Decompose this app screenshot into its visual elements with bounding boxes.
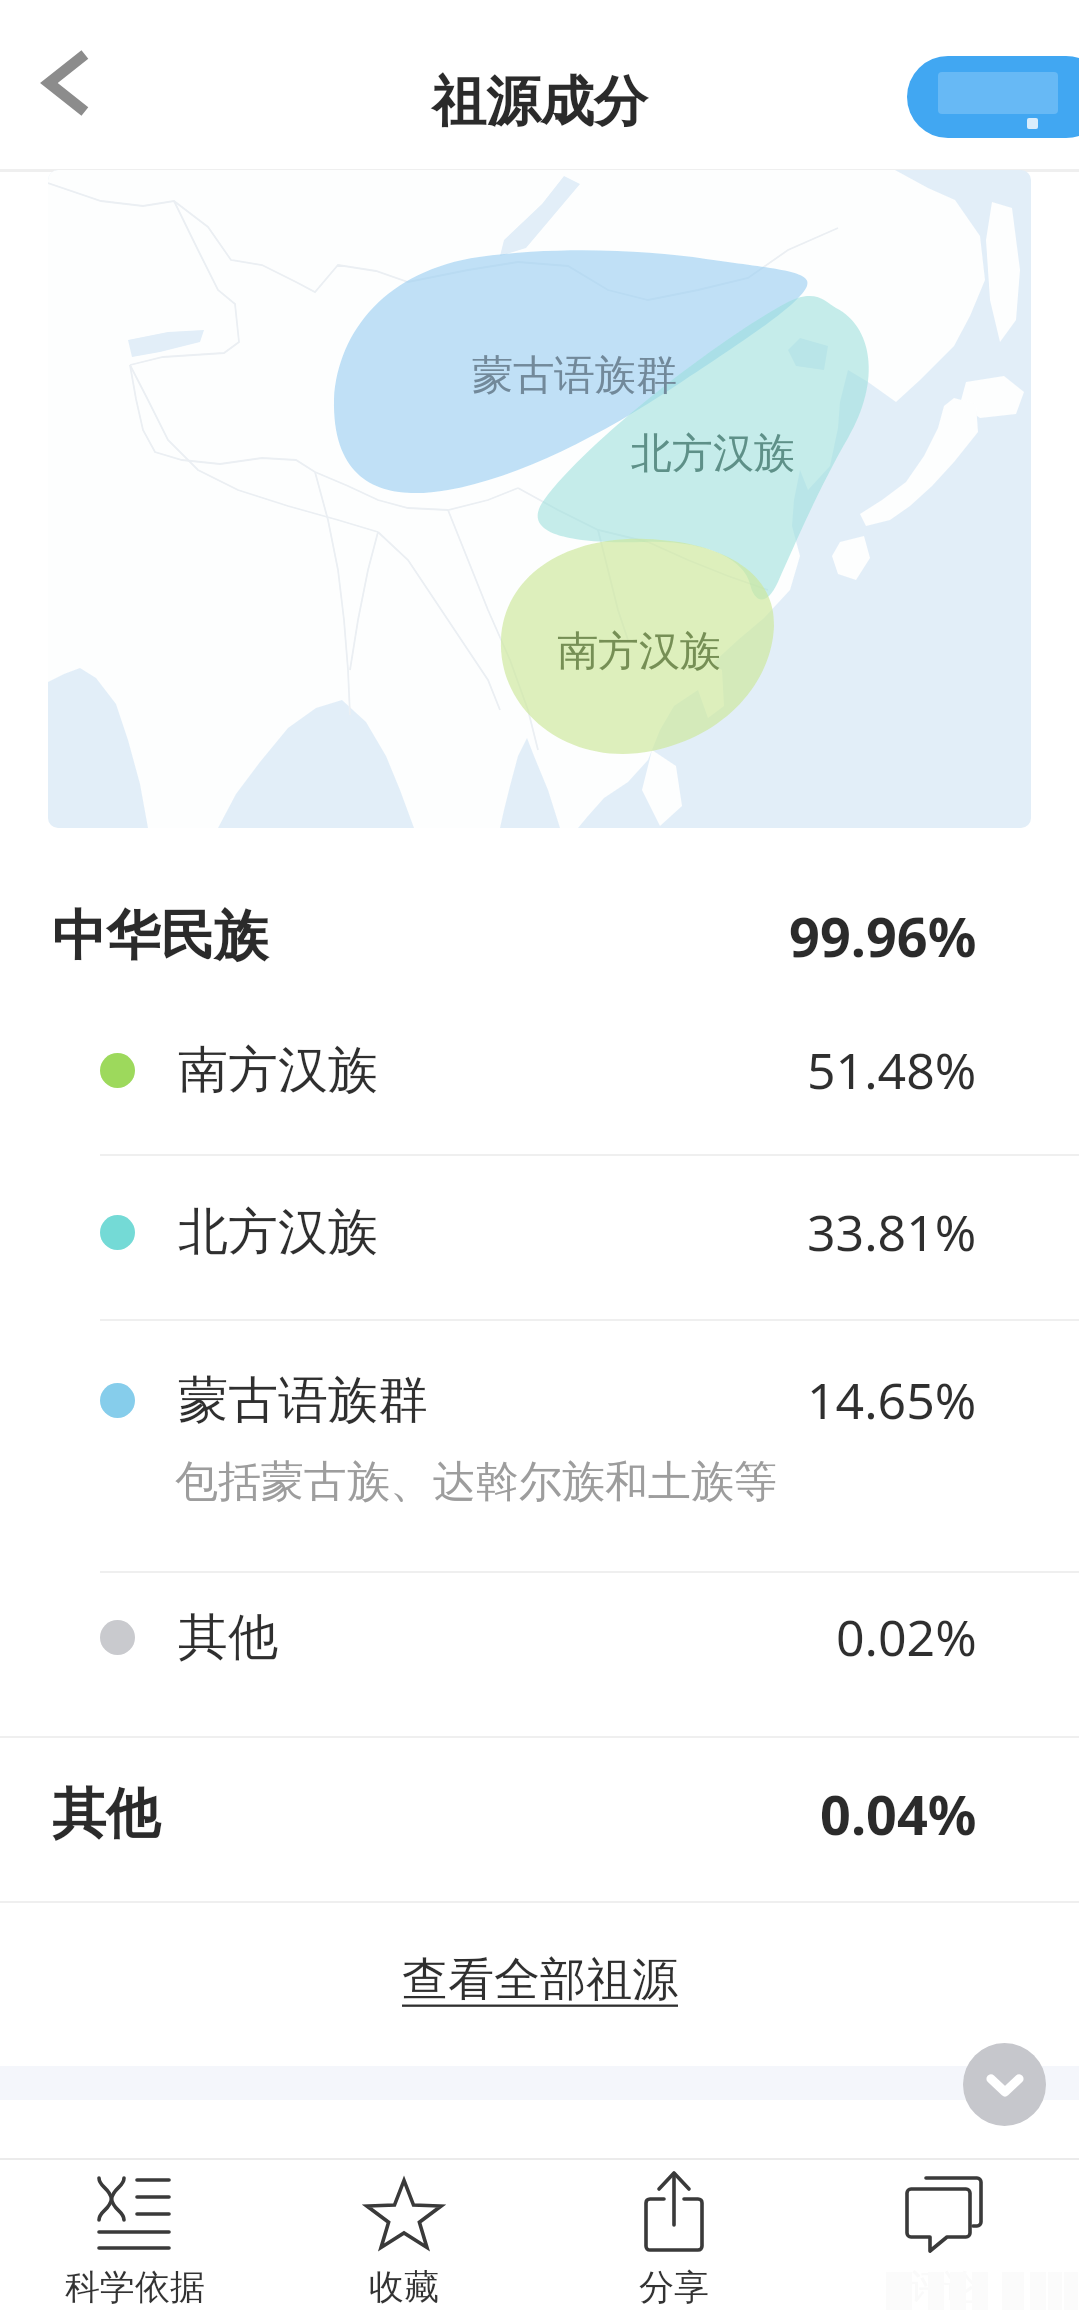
- button[interactable]: 查看全部祖源: [0, 1910, 1079, 2050]
- button[interactable]: Share card: [907, 56, 1079, 138]
- button[interactable]: 分享: [539, 2160, 809, 2323]
- button[interactable]: 南方汉族: [0, 1025, 1079, 1115]
- button[interactable]: 其他: [0, 1775, 1079, 1853]
- staticText: 51.48%: [807, 1036, 977, 1104]
- staticText: 包括蒙古族、达斡尔族和土族等: [175, 1455, 777, 1509]
- staticText: 南方汉族: [178, 1039, 378, 1102]
- staticText: 中华民族: [52, 902, 268, 970]
- staticText: 查看全部祖源: [402, 1951, 678, 2009]
- button[interactable]: Back: [20, 33, 120, 133]
- staticText: 分享: [639, 2265, 709, 2309]
- button[interactable]: 其他: [0, 1592, 1079, 1682]
- button[interactable]: 北方汉族: [0, 1187, 1079, 1277]
- staticText: 南方汉族: [557, 626, 721, 678]
- button[interactable]: 中华民族: [0, 897, 1079, 975]
- staticText: 北方汉族: [631, 428, 795, 480]
- staticText: 其他: [52, 1780, 160, 1848]
- staticText: 14.65%: [807, 1366, 977, 1434]
- button[interactable]: 收藏: [269, 2160, 539, 2323]
- staticText: 99.96%: [789, 899, 977, 973]
- staticText: 科学依据: [65, 2265, 205, 2309]
- button[interactable]: Collapse: [963, 2043, 1046, 2126]
- staticText: 蒙古语族群: [178, 1369, 428, 1432]
- staticText: 33.81%: [807, 1198, 977, 1266]
- button[interactable]: 评论: [809, 2160, 1079, 2323]
- staticText: 收藏: [369, 2265, 439, 2309]
- staticText: 北方汉族: [178, 1201, 378, 1264]
- staticText: 0.04%: [820, 1777, 977, 1851]
- button[interactable]: 蒙古语族群: [0, 1355, 1079, 1509]
- staticText: 祖源成分: [432, 68, 648, 136]
- button[interactable]: 科学依据: [0, 2160, 269, 2323]
- staticText: 蒙古语族群: [472, 350, 677, 402]
- staticText: 其他: [178, 1606, 278, 1669]
- staticText: 0.02%: [836, 1603, 977, 1671]
